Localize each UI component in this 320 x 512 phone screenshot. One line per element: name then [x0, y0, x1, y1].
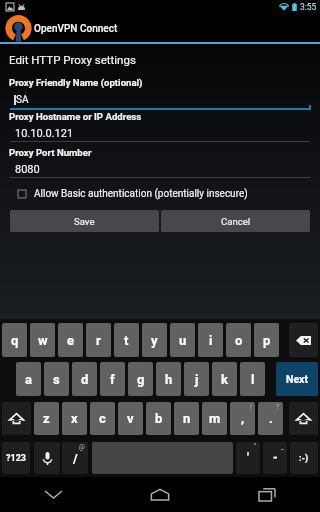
button[interactable]: ?123: [2, 442, 30, 474]
button[interactable]: x: [62, 402, 87, 435]
button[interactable]: -: [263, 442, 287, 474]
button[interactable]: r: [86, 323, 111, 357]
staticText: :-): [299, 453, 309, 464]
button[interactable]: ,: [230, 402, 255, 435]
staticText: x: [71, 411, 78, 426]
staticText: n: [183, 411, 191, 426]
button[interactable]: Delete: [289, 323, 318, 357]
button[interactable]: a: [16, 362, 41, 396]
staticText: 10.10.0.121: [15, 127, 74, 140]
staticText: ': [247, 451, 249, 465]
staticText: .: [269, 411, 273, 426]
button[interactable]: Save: [10, 210, 159, 232]
staticText: Save: [74, 216, 95, 227]
staticText: Proxy Hostname or IP Address: [9, 111, 142, 122]
button[interactable]: u: [170, 323, 195, 357]
staticText: w: [38, 333, 48, 348]
staticText: d: [81, 372, 89, 387]
staticText: m: [209, 411, 221, 426]
staticText: g: [137, 372, 145, 387]
staticText: -: [273, 451, 278, 465]
button[interactable]: m: [202, 402, 227, 435]
button[interactable]: c: [90, 402, 115, 435]
button[interactable]: p: [254, 323, 279, 357]
button[interactable]: y: [142, 323, 167, 357]
staticText: r: [96, 333, 101, 348]
button[interactable]: t: [114, 323, 139, 357]
button[interactable]: q: [2, 323, 27, 357]
button[interactable]: SA: [9, 91, 311, 108]
button[interactable]: i: [198, 323, 223, 357]
button[interactable]: l: [240, 362, 265, 396]
staticText: OpenVPN Connect: [34, 23, 118, 35]
staticText: j: [195, 372, 199, 387]
button[interactable]: Hide keyboard: [0, 477, 106, 512]
staticText: _: [281, 443, 284, 451]
staticText: a: [25, 372, 32, 387]
button[interactable]: 8080: [9, 162, 311, 176]
staticText: y: [151, 333, 158, 348]
staticText: u: [179, 333, 187, 348]
staticText: f: [110, 372, 115, 387]
staticText: b: [155, 411, 163, 426]
staticText: i: [209, 333, 213, 348]
button[interactable]: Shift: [2, 402, 31, 435]
button[interactable]: g: [128, 362, 153, 396]
staticText: s: [53, 372, 60, 387]
staticText: ": [254, 443, 257, 451]
staticText: Allow Basic authentication (potentially …: [34, 188, 248, 200]
staticText: p: [263, 333, 271, 348]
button[interactable]: d: [72, 362, 97, 396]
staticText: c: [99, 411, 106, 426]
button[interactable]: /: [62, 442, 88, 474]
staticText: h: [165, 372, 173, 387]
button[interactable]: o: [226, 323, 251, 357]
button[interactable]: z: [34, 402, 59, 435]
button[interactable]: s: [44, 362, 69, 396]
button[interactable]: OpenVPN Connect: [0, 14, 320, 42]
button[interactable]: n: [174, 402, 199, 435]
staticText: v: [127, 411, 134, 426]
staticText: e: [67, 333, 75, 348]
button[interactable]: :-): [290, 442, 318, 474]
staticText: z: [43, 411, 50, 426]
staticText: ?123: [6, 453, 26, 464]
button[interactable]: Voice input: [34, 442, 60, 474]
button[interactable]: w: [30, 323, 55, 357]
button[interactable]: Home: [106, 477, 213, 512]
button[interactable]: h: [156, 362, 181, 396]
staticText: Next: [286, 373, 308, 385]
button[interactable]: .: [258, 402, 283, 435]
button[interactable]: v: [118, 402, 143, 435]
staticText: o: [235, 333, 243, 348]
staticText: l: [251, 372, 255, 387]
button[interactable]: b: [146, 402, 171, 435]
button[interactable]: Recent apps: [213, 477, 320, 512]
staticText: SA: [16, 94, 29, 106]
button[interactable]: Shift: [289, 402, 318, 435]
button[interactable]: Allow Basic authentication (potentially …: [18, 188, 248, 200]
staticText: ?: [276, 403, 280, 411]
button[interactable]: k: [212, 362, 237, 396]
button[interactable]: Cancel: [161, 210, 310, 232]
button[interactable]: e: [58, 323, 83, 357]
staticText: k: [221, 372, 228, 387]
staticText: 8080: [15, 163, 40, 176]
button[interactable]: 10.10.0.121: [9, 126, 311, 140]
button[interactable]: f: [100, 362, 125, 396]
staticText: Proxy Friendly Name (optional): [9, 77, 143, 88]
button[interactable]: ': [236, 442, 260, 474]
staticText: ,: [241, 411, 245, 426]
staticText: t: [124, 333, 129, 348]
button[interactable]: j: [184, 362, 209, 396]
staticText: q: [11, 333, 19, 348]
staticText: Proxy Port Number: [9, 147, 92, 158]
staticText: Edit HTTP Proxy settings: [9, 53, 136, 66]
staticText: Cancel: [221, 216, 251, 227]
button[interactable]: Next: [276, 362, 318, 396]
staticText: @: [79, 443, 85, 451]
staticText: 3:55: [300, 2, 317, 12]
staticText: !: [250, 403, 252, 411]
staticText: /: [73, 451, 78, 466]
